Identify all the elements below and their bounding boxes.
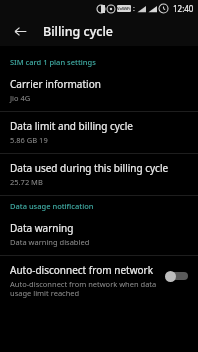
staticText: 12:40 bbox=[173, 3, 194, 14]
button[interactable]: Auto-disconnect from network bbox=[0, 256, 198, 307]
staticText: : bbox=[133, 4, 135, 14]
staticText: 5.86 GB 19 bbox=[10, 135, 48, 145]
staticText: Carrier information bbox=[10, 77, 101, 91]
button[interactable]: Carrier information bbox=[0, 70, 198, 111]
staticText: Data used during this billing cycle bbox=[10, 161, 169, 175]
staticText: Data warning bbox=[10, 221, 74, 235]
staticText: Jio 4G bbox=[10, 93, 31, 103]
button[interactable]: Data limit and billing cycle bbox=[0, 112, 198, 153]
staticText: Data limit and billing cycle bbox=[10, 119, 133, 133]
button[interactable]: Data warning bbox=[0, 214, 198, 255]
staticText: Auto-disconnect from network when data u… bbox=[10, 279, 158, 299]
button[interactable]: Navigate up bbox=[8, 19, 32, 43]
button[interactable]: Auto-disconnect from network toggle bbox=[164, 268, 190, 284]
staticText: Data usage notification bbox=[10, 201, 94, 211]
staticText: Billing cycle bbox=[43, 23, 113, 40]
staticText: Data warning disabled bbox=[10, 237, 90, 247]
staticText: 25.72 MB bbox=[10, 177, 43, 187]
staticText: VoWiFi bbox=[117, 6, 131, 11]
button[interactable]: Data used during this billing cycle bbox=[0, 154, 198, 195]
staticText: SIM card 1 plan settings bbox=[10, 57, 96, 67]
staticText: Auto-disconnect from network bbox=[10, 263, 154, 277]
